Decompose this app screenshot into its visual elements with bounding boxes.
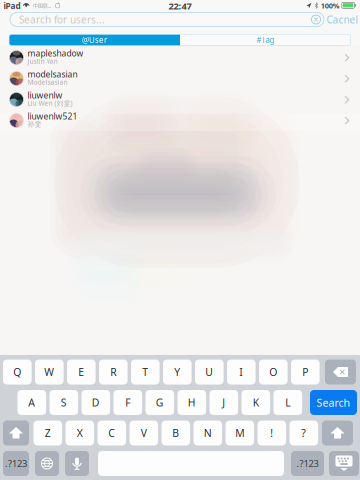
button[interactable]: E: [67, 359, 96, 384]
staticText: Cacnel: [326, 13, 358, 26]
staticText: D: [92, 395, 100, 410]
button[interactable]: Shift: [3, 420, 29, 445]
button[interactable]: H: [177, 390, 206, 415]
button[interactable]: X: [65, 420, 94, 445]
staticText: @User: [82, 35, 107, 45]
staticText: Y: [174, 365, 180, 379]
staticText: 100%: [321, 0, 340, 11]
button[interactable]: Shift: [322, 420, 353, 445]
staticText: 22:47: [168, 0, 191, 12]
staticText: iPad: [3, 0, 20, 11]
button[interactable]: F: [113, 390, 142, 415]
button[interactable]: C: [97, 420, 126, 445]
button[interactable]: S: [49, 390, 78, 415]
staticText: G: [156, 395, 164, 410]
staticText: K: [253, 395, 259, 410]
staticText: M: [235, 426, 244, 440]
button[interactable]: ?: [289, 420, 318, 445]
staticText: Justin Yan: [27, 57, 57, 66]
button[interactable]: L: [273, 390, 302, 415]
button[interactable]: modelsasian: [0, 68, 360, 89]
button[interactable]: Cacnel: [325, 13, 359, 25]
staticText: Q: [13, 365, 21, 379]
button[interactable]: !: [257, 420, 286, 445]
button[interactable]: D: [81, 390, 110, 415]
button[interactable]: Z: [33, 420, 62, 445]
staticText: F: [125, 395, 130, 410]
button[interactable]: J: [209, 390, 238, 415]
button[interactable]: Y: [163, 359, 192, 384]
button[interactable]: Dismiss keyboard: [329, 451, 359, 476]
staticText: O: [269, 365, 277, 379]
staticText: C: [108, 426, 115, 440]
button[interactable]: K: [241, 390, 270, 415]
staticText: ?: [301, 426, 306, 440]
button[interactable]: Dictation: [65, 451, 89, 476]
button[interactable]: U: [195, 359, 224, 384]
staticText: .?123: [5, 457, 27, 470]
button[interactable]: V: [129, 420, 158, 445]
staticText: Search for users...: [19, 13, 105, 26]
staticText: Search: [316, 395, 350, 410]
button[interactable]: M: [225, 420, 254, 445]
button[interactable]: @User: [9, 34, 180, 45]
button[interactable]: A: [17, 390, 46, 415]
staticText: B: [172, 426, 179, 440]
staticText: Liu Wen (刘雯): [27, 99, 72, 108]
button[interactable]: I: [227, 359, 256, 384]
staticText: L: [285, 395, 290, 410]
button[interactable]: G: [145, 390, 174, 415]
staticText: E: [78, 365, 84, 379]
button[interactable]: .?123: [3, 451, 29, 476]
staticText: Z: [45, 426, 51, 440]
staticText: T: [142, 365, 148, 379]
staticText: J: [222, 395, 225, 410]
staticText: !: [270, 426, 273, 440]
staticText: liuwenlw521: [27, 110, 77, 122]
button[interactable]: Next keyboard: [35, 451, 59, 476]
staticText: .?123: [296, 457, 318, 470]
staticText: N: [204, 426, 212, 440]
button[interactable]: P: [291, 359, 320, 384]
button[interactable]: W: [35, 359, 64, 384]
button[interactable]: Search: [310, 390, 357, 415]
staticText: mapleshadow: [27, 47, 83, 59]
staticText: I: [239, 365, 243, 379]
staticText: U: [205, 365, 213, 379]
button[interactable]: Q: [3, 359, 32, 384]
button[interactable]: R: [99, 359, 128, 384]
button[interactable]: B: [161, 420, 190, 445]
staticText: liuwenlw: [27, 89, 62, 101]
staticText: W: [44, 365, 54, 379]
button[interactable]: N: [193, 420, 222, 445]
staticText: #Tag: [256, 35, 274, 45]
staticText: S: [61, 395, 67, 410]
staticText: V: [141, 426, 147, 440]
button[interactable]: liuwenlw: [0, 89, 360, 110]
button[interactable]: mapleshadow: [0, 47, 360, 68]
staticText: modelsasian: [27, 68, 77, 80]
staticText: 孙雯: [27, 120, 41, 128]
button[interactable]: .?123: [291, 451, 324, 476]
staticText: P: [302, 365, 308, 379]
staticText: A: [28, 395, 35, 410]
staticText: H: [188, 395, 196, 410]
staticText: X: [77, 426, 83, 440]
button[interactable]: #Tag: [180, 34, 351, 45]
button[interactable]: liuwenlw521: [0, 110, 360, 131]
button[interactable]: Clear text: [311, 15, 320, 24]
button[interactable]: O: [259, 359, 288, 384]
button[interactable]: Delete: [325, 359, 356, 384]
button[interactable]: T: [131, 359, 160, 384]
staticText: R: [110, 365, 116, 379]
staticText: Modelsasian: [27, 78, 67, 87]
staticText: 中国联通: [33, 2, 51, 9]
